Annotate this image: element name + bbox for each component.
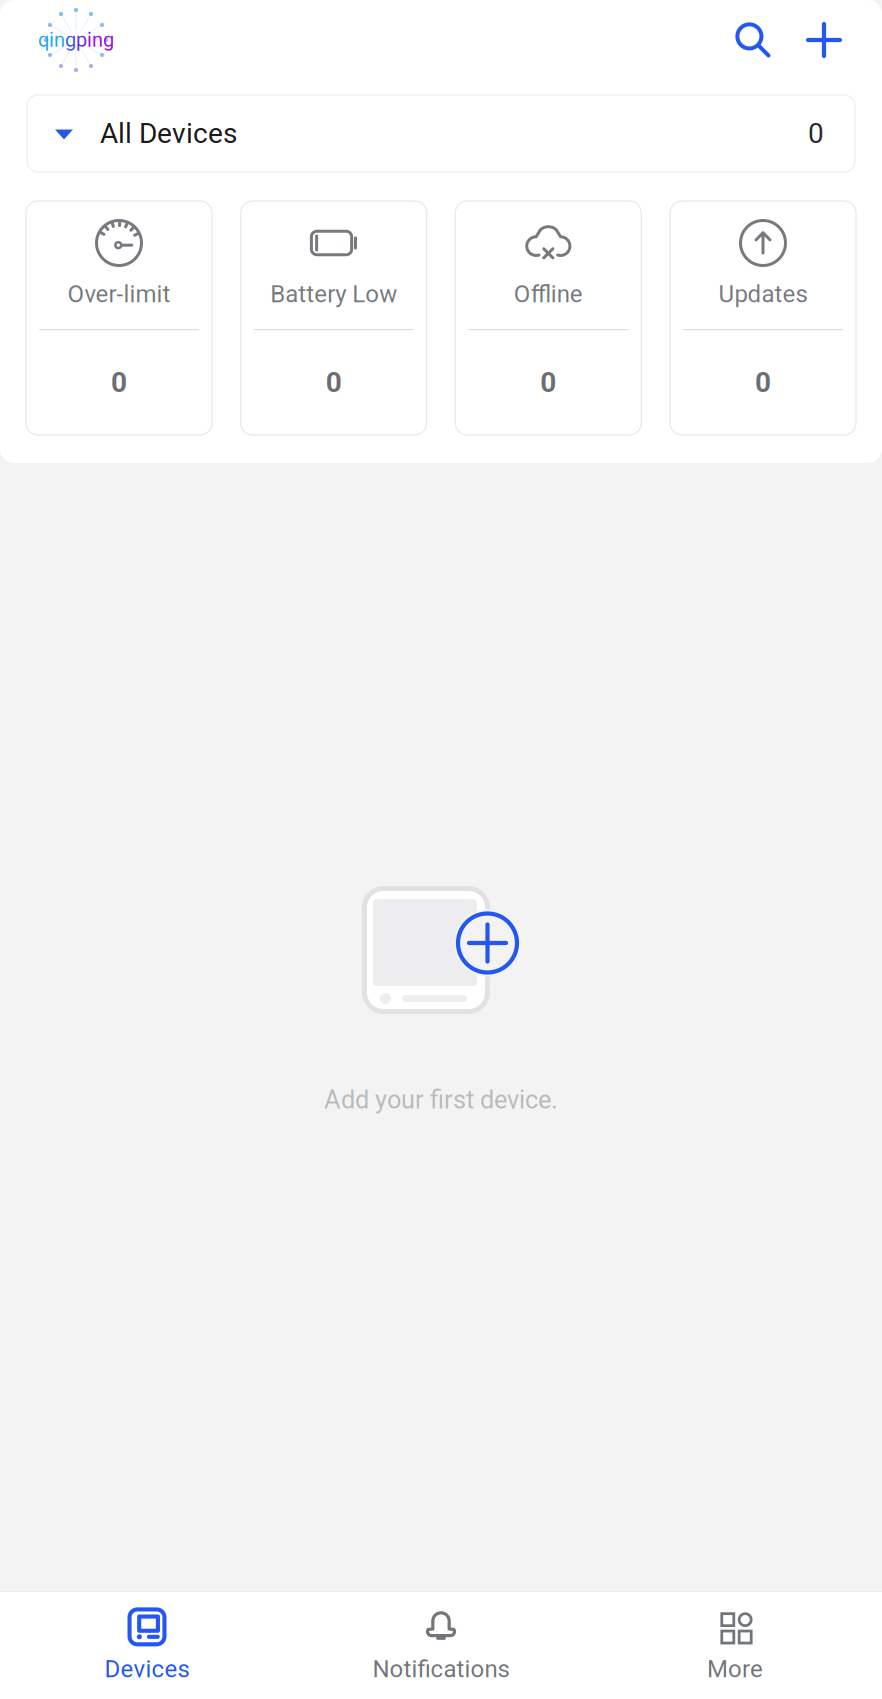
staticText: More	[707, 1655, 763, 1683]
staticText: Offline	[514, 280, 583, 308]
button[interactable]: Search	[722, 9, 784, 71]
button[interactable]: Over-limit	[26, 201, 212, 435]
button[interactable]: Notifications	[294, 1592, 588, 1699]
staticText: Over-limit	[67, 280, 170, 308]
button[interactable]: Battery Low	[241, 201, 427, 435]
staticText: Add your first device.	[324, 1085, 558, 1115]
staticText: qin	[38, 28, 65, 52]
staticText: Devices	[104, 1655, 189, 1683]
staticText: p	[76, 28, 87, 52]
staticText: ing	[87, 28, 114, 52]
button[interactable]: More	[588, 1592, 882, 1699]
staticText: 0	[111, 366, 127, 399]
staticText: Battery Low	[270, 280, 397, 308]
button[interactable]: Offline	[455, 201, 641, 435]
button[interactable]: All Devices	[0, 95, 882, 172]
staticText: 0	[540, 366, 556, 399]
staticText: Updates	[718, 280, 807, 308]
staticText: 0	[326, 366, 342, 399]
button[interactable]: Updates	[670, 201, 856, 435]
staticText: 0	[808, 117, 824, 150]
button[interactable]: Add device	[793, 9, 855, 71]
staticText: 0	[755, 366, 771, 399]
staticText: Notifications	[372, 1655, 509, 1683]
button[interactable]: Devices	[0, 1592, 294, 1699]
staticText: All Devices	[100, 117, 237, 150]
staticText: g	[65, 28, 76, 52]
